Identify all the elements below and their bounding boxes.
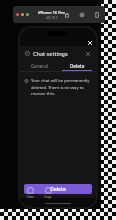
staticText: Save [27, 195, 34, 199]
button[interactable]: Minimize window [21, 13, 24, 16]
button[interactable]: Close window [16, 13, 19, 16]
staticText: iPhone 16 Pro [38, 10, 65, 15]
button[interactable]: Settings [78, 11, 86, 19]
button[interactable]: General [20, 60, 58, 71]
button[interactable]: Rotate device [93, 11, 101, 19]
button[interactable]: Dismiss [86, 39, 93, 46]
staticText: General [31, 63, 48, 69]
button[interactable]: Maximize window [26, 13, 29, 16]
staticText: Your chat will be permanently deleted. T… [31, 78, 90, 96]
button[interactable]: Delete [58, 60, 96, 71]
button[interactable]: Delete [24, 184, 92, 194]
button[interactable]: Copy [41, 187, 55, 199]
staticText: Chat settings [33, 50, 68, 57]
staticText: Delete [50, 186, 66, 193]
staticText: Copy [44, 195, 52, 199]
button[interactable]: Close dialog [84, 50, 91, 57]
button[interactable]: Home [63, 11, 71, 19]
staticText: iOS 18.2 [46, 16, 58, 20]
button[interactable]: Save [23, 187, 37, 199]
staticText: Delete [70, 63, 85, 69]
